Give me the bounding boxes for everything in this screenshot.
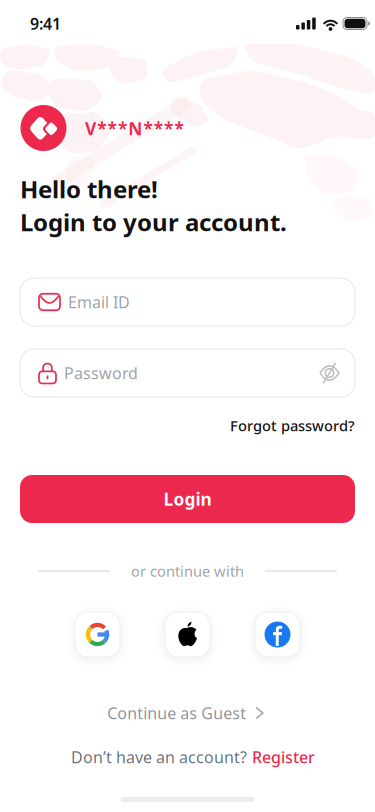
staticText: Forgot password? [230, 416, 355, 435]
staticText: Register [252, 746, 315, 768]
staticText: 9:41 [30, 13, 61, 34]
button[interactable]: Password [20, 349, 355, 397]
button[interactable] [255, 612, 300, 657]
staticText: Email ID [68, 291, 130, 313]
button[interactable]: Email ID [20, 278, 355, 326]
staticText: Password [64, 362, 138, 384]
staticText: or continue with [131, 561, 244, 581]
button[interactable]: Register [252, 746, 315, 768]
staticText: V***N**** [85, 117, 183, 140]
button[interactable]: Continue as Guest [107, 702, 263, 724]
button[interactable] [165, 612, 210, 657]
button[interactable]: Login [20, 475, 355, 523]
staticText: Login [163, 487, 211, 510]
button[interactable] [320, 365, 339, 380]
button[interactable]: Forgot password? [0, 416, 375, 435]
staticText: Don’t have an account? [71, 746, 247, 768]
staticText: Login to your account. [20, 206, 287, 238]
staticText: Hello there! [20, 173, 158, 205]
staticText: Continue as Guest [107, 702, 246, 724]
button[interactable] [75, 612, 120, 657]
